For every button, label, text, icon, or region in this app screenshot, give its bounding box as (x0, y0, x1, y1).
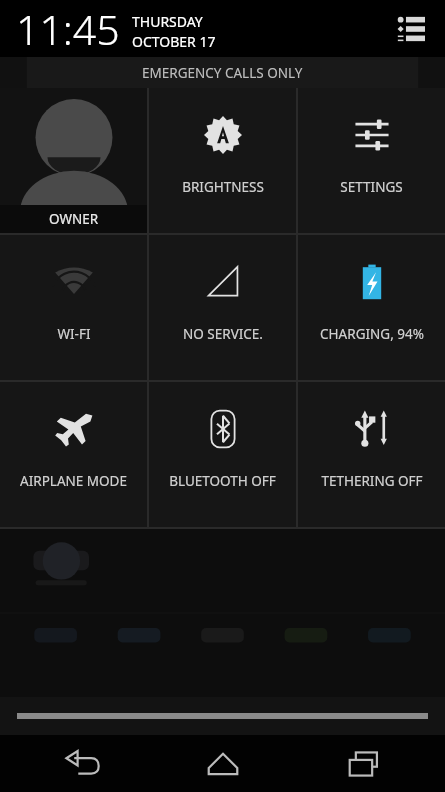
button[interactable]: AIRPLANE MODE (0, 382, 147, 527)
button[interactable]: OWNER (0, 88, 147, 233)
button[interactable]: Notifications (389, 7, 433, 51)
button[interactable]: BRIGHTNESS (149, 88, 296, 233)
button[interactable]: Drag handle (0, 697, 445, 735)
button[interactable]: WI-FI (0, 235, 147, 380)
staticText: AIRPLANE MODE (20, 472, 127, 490)
button[interactable]: TETHERING OFF (298, 382, 445, 527)
staticText: WI-FI (57, 325, 91, 343)
button[interactable]: Home (163, 735, 283, 792)
staticText: BRIGHTNESS (182, 178, 264, 196)
button[interactable]: Recent apps (304, 735, 424, 792)
staticText: OCTOBER 17 (132, 32, 216, 51)
staticText: TETHERING OFF (321, 472, 423, 490)
button[interactable]: Back (21, 735, 141, 792)
button[interactable]: BLUETOOTH OFF (149, 382, 296, 527)
staticText: EMERGENCY CALLS ONLY (142, 64, 303, 82)
button[interactable]: NO SERVICE. (149, 235, 296, 380)
staticText: OWNER (49, 210, 99, 228)
button[interactable]: CHARGING, 94% (298, 235, 445, 380)
staticText: NO SERVICE. (183, 325, 263, 343)
staticText: CHARGING, 94% (320, 325, 424, 343)
button[interactable]: SETTINGS (298, 88, 445, 233)
staticText: 11:45 (16, 1, 120, 57)
staticText: THURSDAY (132, 12, 203, 31)
staticText: SETTINGS (340, 178, 403, 196)
staticText: BLUETOOTH OFF (169, 472, 276, 490)
